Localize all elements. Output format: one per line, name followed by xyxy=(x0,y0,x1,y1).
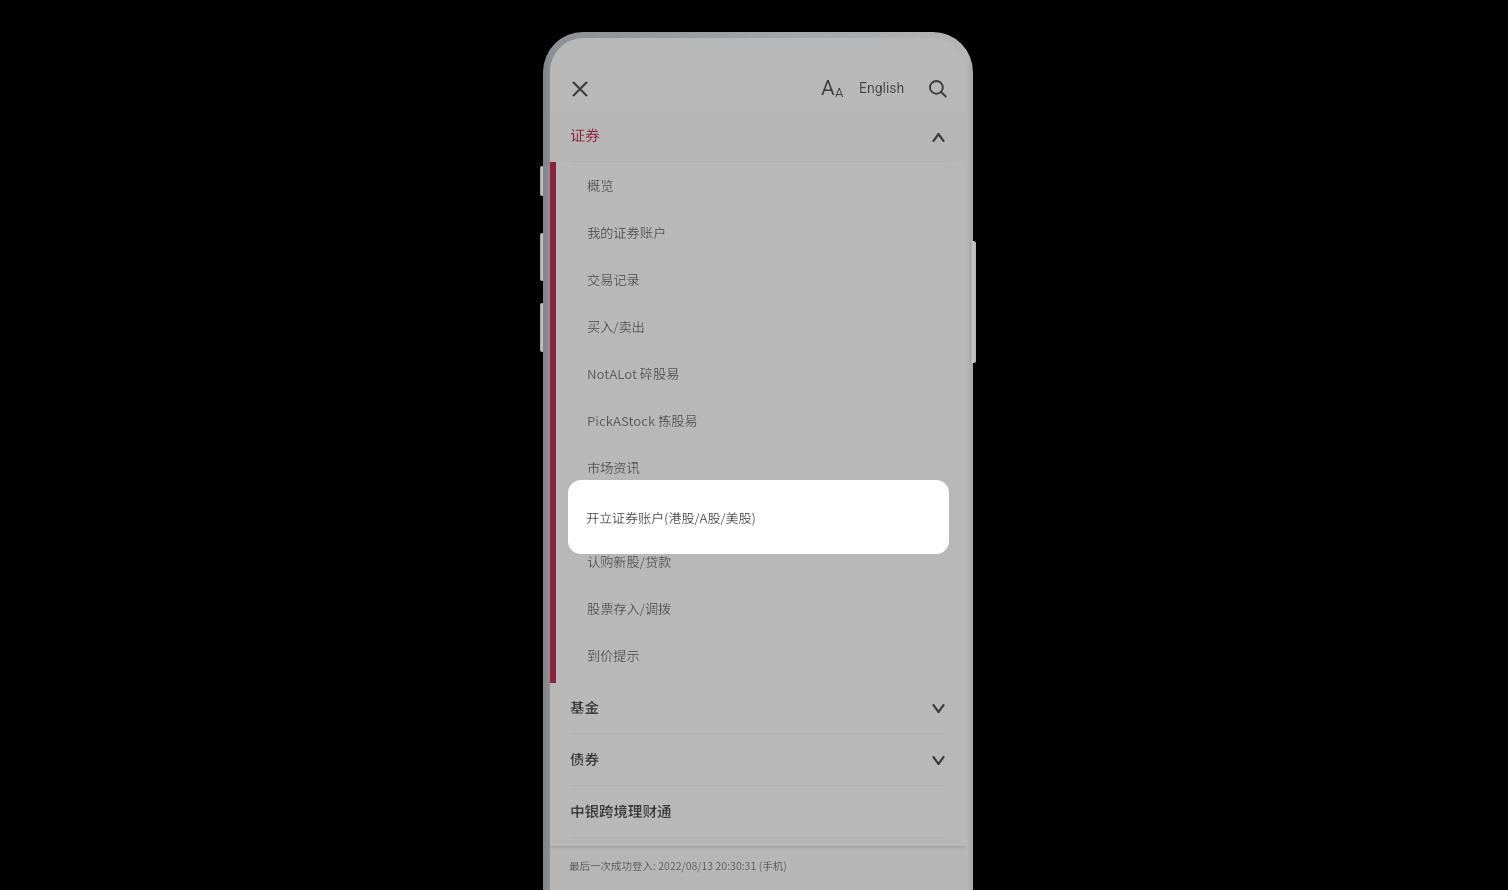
staticText: 开立证券账户(港股/A股/美股) xyxy=(587,505,760,524)
staticText: 买入/卖出 xyxy=(587,317,645,336)
button[interactable]: Text size xyxy=(812,64,852,112)
button[interactable]: 开立证券账户(港股/A股/美股) xyxy=(556,491,966,538)
button[interactable]: 债券 xyxy=(550,734,966,786)
staticText: 开立证券账户(港股/A股/美股) xyxy=(586,508,756,527)
button[interactable]: 市场资讯 xyxy=(556,444,966,491)
staticText: 我的证券账户 xyxy=(587,223,667,242)
staticText: 基金 xyxy=(570,696,599,717)
button[interactable]: 股票存入/调拨 xyxy=(556,585,966,632)
button[interactable]: 中银跨境理财通 xyxy=(550,786,966,838)
staticText: 证券 xyxy=(570,124,601,146)
staticText: NotALot 碎股易 xyxy=(587,364,680,383)
button[interactable]: 到价提示 xyxy=(556,632,966,679)
button[interactable]: English xyxy=(858,64,906,112)
button[interactable]: 证券 xyxy=(550,112,966,162)
button[interactable]: 认购新股/贷款 xyxy=(556,538,966,585)
staticText: 认购新股/贷款 xyxy=(587,552,672,571)
staticText: PickAStock 拣股易 xyxy=(587,411,698,430)
staticText: A xyxy=(835,85,844,100)
staticText: 交易记录 xyxy=(587,270,640,289)
staticText: English xyxy=(859,80,905,96)
staticText: 中银跨境理财通 xyxy=(570,800,672,821)
staticText: 最后一次成功登入: 2022/08/13 20:30:31 (手机) xyxy=(569,858,787,873)
button[interactable]: NotALot 碎股易 xyxy=(556,350,966,397)
button[interactable]: 我的证券账户 xyxy=(556,209,966,256)
staticText: A xyxy=(821,76,835,101)
staticText: 债券 xyxy=(570,748,599,769)
staticText: 市场资讯 xyxy=(587,458,640,477)
staticText: 到价提示 xyxy=(587,646,640,665)
staticText: 股票存入/调拨 xyxy=(587,599,672,618)
button[interactable]: Search xyxy=(917,64,957,112)
button[interactable]: 开立证券账户(港股/A股/美股) xyxy=(568,480,949,554)
button[interactable]: 买入/卖出 xyxy=(556,303,966,350)
button[interactable]: PickAStock 拣股易 xyxy=(556,397,966,444)
button[interactable]: 概览 xyxy=(556,162,966,209)
staticText: 概览 xyxy=(587,176,614,195)
button[interactable]: 交易记录 xyxy=(556,256,966,303)
button[interactable]: 基金 xyxy=(550,683,966,734)
button[interactable]: Close xyxy=(556,65,604,113)
